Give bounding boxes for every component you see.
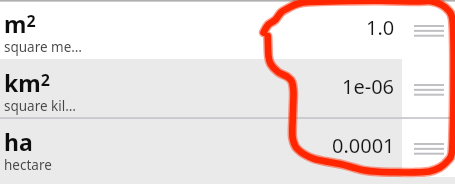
staticText: m2 [4,8,36,39]
staticText: ha [4,126,33,157]
staticText: square kil… [4,97,76,115]
staticText: 1.0 [366,14,395,41]
button[interactable]: km2 [0,59,402,118]
button[interactable]: Reorder unit [402,59,455,118]
staticText: 1e-06 [342,73,395,100]
button[interactable]: m2 [0,0,402,59]
staticText: km2 [4,67,50,98]
staticText: 0.0001 [332,132,395,159]
button[interactable]: ha [0,118,402,177]
staticText: hectare [4,156,52,174]
button[interactable]: Reorder unit [402,118,455,177]
staticText: square me… [4,38,83,56]
button[interactable]: Reorder unit [402,0,455,59]
